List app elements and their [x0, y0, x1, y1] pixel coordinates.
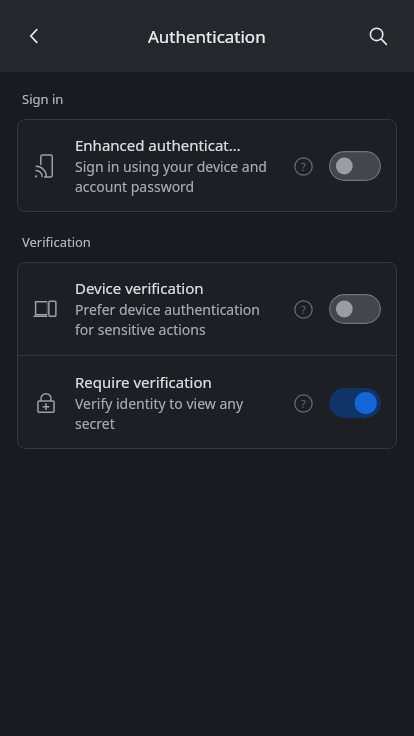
button[interactable]: Help: [283, 289, 323, 329]
staticText: Prefer device authentication for sensiti…: [75, 300, 275, 339]
staticText: Authentication: [148, 25, 266, 48]
button[interactable]: Help: [283, 146, 323, 186]
button[interactable]: Enhanced authenticat…: [17, 119, 397, 212]
staticText: Sign in using your device and account pa…: [75, 157, 275, 196]
staticText: Device verification: [75, 278, 204, 298]
button[interactable]: Require verification: [17, 356, 397, 449]
staticText: Sign in: [22, 90, 64, 108]
button[interactable]: Toggle off: [329, 294, 381, 324]
staticText: Enhanced authenticat…: [75, 135, 241, 155]
button[interactable]: Device verification: [17, 262, 397, 355]
staticText: ?: [301, 302, 306, 317]
button[interactable]: Toggle off: [329, 151, 381, 181]
button[interactable]: Toggle on: [329, 388, 381, 418]
staticText: Require verification: [75, 372, 212, 392]
staticText: Verify identity to view any secret: [75, 394, 275, 433]
button[interactable]: Search: [360, 18, 396, 54]
staticText: ?: [301, 396, 306, 411]
button[interactable]: Back: [16, 18, 52, 54]
staticText: Verification: [22, 233, 91, 251]
button[interactable]: Help: [283, 383, 323, 423]
staticText: ?: [301, 159, 306, 174]
